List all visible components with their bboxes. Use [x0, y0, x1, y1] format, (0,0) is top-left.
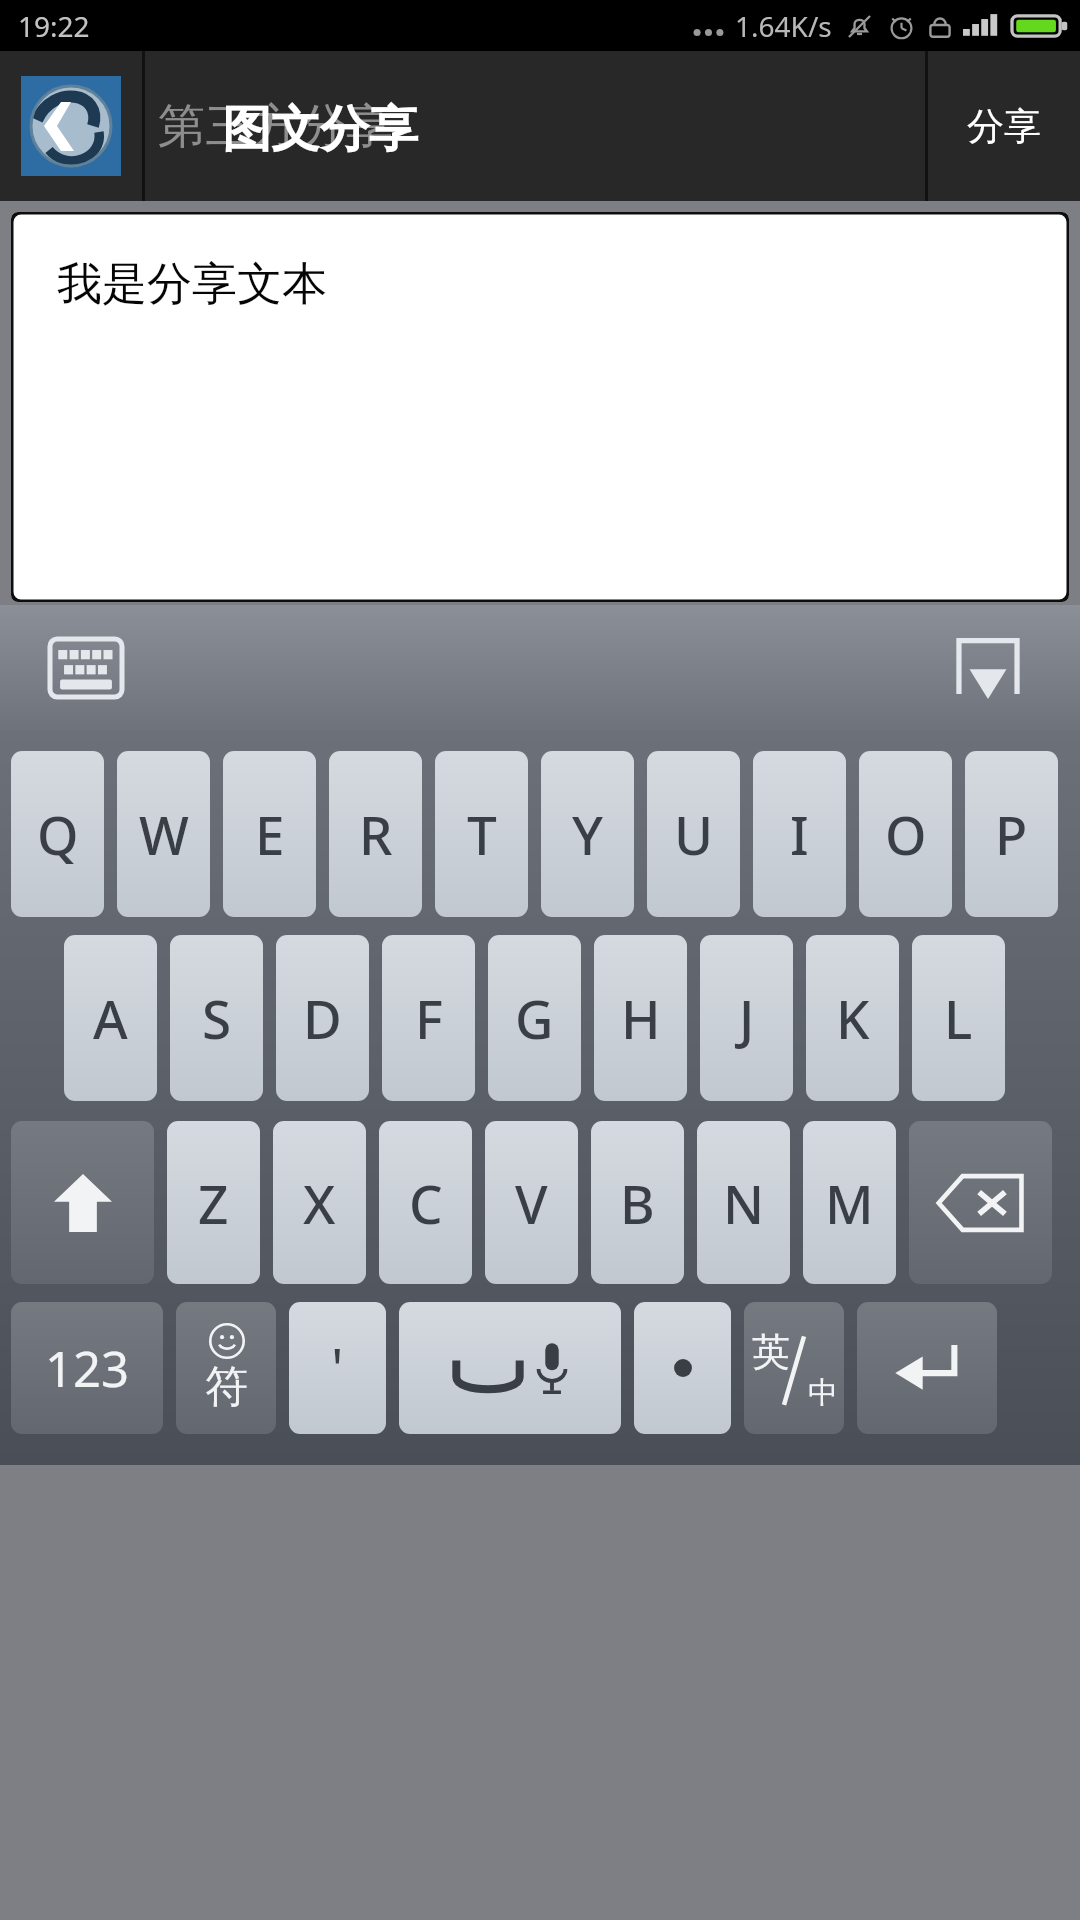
button[interactable]: L: [912, 935, 1005, 1101]
staticText: Q: [37, 798, 79, 870]
staticText: V: [515, 1167, 548, 1239]
button[interactable]: [634, 1302, 731, 1434]
staticText: Y: [572, 798, 603, 870]
button[interactable]: 返回: [0, 51, 142, 201]
button[interactable]: Q: [11, 751, 104, 917]
button[interactable]: A: [64, 935, 157, 1101]
button[interactable]: Shift: [11, 1121, 154, 1284]
staticText: U: [674, 798, 714, 870]
button[interactable]: X: [273, 1121, 366, 1284]
staticText: A: [93, 982, 128, 1054]
staticText: R: [359, 798, 393, 870]
button[interactable]: P: [965, 751, 1058, 917]
button[interactable]: J: [700, 935, 793, 1101]
staticText: 中: [808, 1374, 838, 1412]
button[interactable]: B: [591, 1121, 684, 1284]
staticText: S: [202, 982, 232, 1054]
button[interactable]: N: [697, 1121, 790, 1284]
button[interactable]: 123: [11, 1302, 163, 1434]
staticText: ': [331, 1330, 344, 1406]
button[interactable]: Y: [541, 751, 634, 917]
staticText: K: [836, 982, 870, 1054]
button[interactable]: R: [329, 751, 422, 917]
button[interactable]: M: [803, 1121, 896, 1284]
staticText: N: [723, 1167, 765, 1239]
button[interactable]: E: [223, 751, 316, 917]
button[interactable]: C: [379, 1121, 472, 1284]
staticText: L: [944, 982, 973, 1054]
button[interactable]: U: [647, 751, 740, 917]
staticText: I: [790, 798, 809, 870]
button[interactable]: D: [276, 935, 369, 1101]
staticText: 英: [752, 1328, 790, 1376]
staticText: W: [139, 798, 189, 870]
staticText: 我是分享文本: [57, 256, 327, 313]
button[interactable]: 分享: [928, 51, 1080, 201]
button[interactable]: G: [488, 935, 581, 1101]
button[interactable]: V: [485, 1121, 578, 1284]
staticText: 19:22: [18, 7, 90, 45]
button[interactable]: 退格: [909, 1121, 1052, 1284]
staticText: E: [255, 798, 285, 870]
staticText: 123: [45, 1335, 130, 1402]
staticText: C: [409, 1167, 443, 1239]
staticText: J: [739, 982, 755, 1054]
staticText: P: [995, 798, 1028, 870]
staticText: H: [621, 982, 661, 1054]
button[interactable]: ': [289, 1302, 386, 1434]
staticText: 1.64K/s: [735, 7, 832, 45]
button[interactable]: T: [435, 751, 528, 917]
button[interactable]: K: [806, 935, 899, 1101]
button[interactable]: F: [382, 935, 475, 1101]
button[interactable]: 我是分享文本: [11, 212, 1069, 602]
staticText: Z: [198, 1167, 229, 1239]
staticText: O: [885, 798, 927, 870]
button[interactable]: O: [859, 751, 952, 917]
button[interactable]: 切换输入法: [38, 625, 134, 711]
button[interactable]: 回车: [857, 1302, 997, 1434]
button[interactable]: 中英文切换: [744, 1302, 844, 1434]
button[interactable]: [399, 1302, 621, 1434]
staticText: M: [825, 1167, 874, 1239]
staticText: 分享: [967, 103, 1041, 150]
button[interactable]: W: [117, 751, 210, 917]
button[interactable]: 收起键盘: [940, 625, 1036, 711]
staticText: 符: [205, 1360, 248, 1414]
button[interactable]: S: [170, 935, 263, 1101]
button[interactable]: 符: [176, 1302, 276, 1434]
staticText: T: [467, 798, 497, 870]
staticText: D: [303, 982, 342, 1054]
button[interactable]: I: [753, 751, 846, 917]
staticText: 第三方分享: [158, 97, 393, 156]
staticText: F: [415, 982, 443, 1054]
button[interactable]: H: [594, 935, 687, 1101]
button[interactable]: Z: [167, 1121, 260, 1284]
staticText: X: [303, 1167, 336, 1239]
staticText: 图文分享: [222, 99, 418, 161]
staticText: B: [620, 1167, 655, 1239]
staticText: G: [515, 982, 554, 1054]
